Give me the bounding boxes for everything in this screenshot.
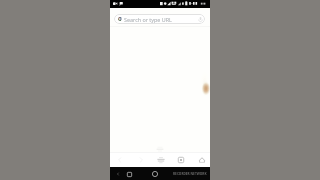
- staticText: Search or type URL: [124, 16, 172, 23]
- staticText: RECORDER NETWORK: [173, 172, 207, 176]
- button[interactable]: Tabs: [175, 152, 186, 167]
- button[interactable]: Home: [149, 168, 161, 180]
- button[interactable]: Search or type URL: [114, 14, 205, 24]
- button[interactable]: Menu: [155, 152, 166, 167]
- button[interactable]: Recents: [123, 168, 135, 180]
- button[interactable]: Back: [114, 168, 121, 180]
- button[interactable]: Home: [196, 152, 207, 167]
